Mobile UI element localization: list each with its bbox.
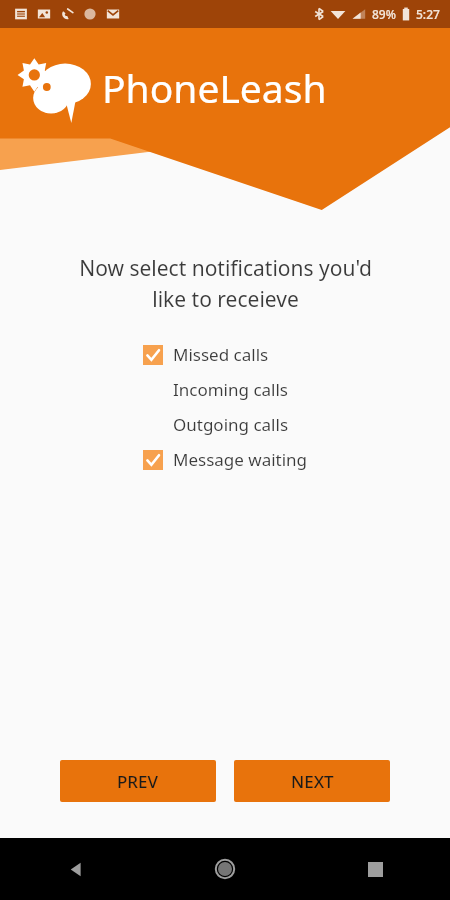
staticText: Now select notifications you'd like to r… <box>79 254 372 313</box>
button[interactable]: Incoming calls <box>142 372 288 407</box>
staticText: 89% <box>372 6 396 22</box>
staticText: NEXT <box>291 770 334 793</box>
button[interactable]: NEXT <box>234 760 390 802</box>
button[interactable]: Message waiting <box>142 442 308 477</box>
staticText: Incoming calls <box>173 378 288 401</box>
staticText: PREV <box>117 770 159 793</box>
staticText: Missed calls <box>173 343 269 366</box>
staticText: PhoneLeash <box>102 61 327 114</box>
button[interactable]: Outgoing calls <box>142 407 289 442</box>
staticText: 5:27 <box>416 6 440 22</box>
button[interactable]: PREV <box>60 760 216 802</box>
button[interactable]: Recent apps <box>300 838 450 900</box>
button[interactable]: Back <box>0 838 150 900</box>
staticText: Outgoing calls <box>173 413 289 436</box>
button[interactable]: Missed calls <box>142 337 269 372</box>
button[interactable]: Home <box>150 838 300 900</box>
staticText: Message waiting <box>173 448 308 471</box>
